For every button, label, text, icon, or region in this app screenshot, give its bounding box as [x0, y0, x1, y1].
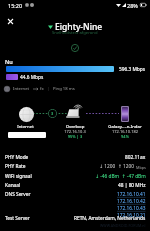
button[interactable]: Kanaal [5, 182, 146, 189]
staticText: 44.6 Mbps [20, 74, 44, 81]
button[interactable]: Close [3, 14, 17, 28]
staticText: Test Server [5, 215, 30, 222]
staticText: 95% | 3 [57, 134, 93, 139]
staticText: ↓ -46 dBm ↑ -47 dBm [95, 173, 146, 180]
staticText: Ping 18 ms [53, 86, 75, 92]
staticText: 172.16.10.43 [117, 205, 146, 212]
staticText: RETN, Amsterdam, Netherlands [74, 215, 146, 222]
staticText: 3 [51, 111, 54, 116]
staticText: DNS Server [5, 191, 31, 198]
staticText: Kanaal [5, 182, 21, 189]
staticText: Galaxy-...n-Indar [102, 123, 148, 129]
staticText: Snelheidstest afgerond [52, 30, 98, 36]
staticText: Eighty-Nine [55, 21, 103, 33]
staticText: 172.16.10.42 [117, 198, 146, 205]
button[interactable]: DNS Server [5, 191, 146, 219]
staticText: Nu [5, 58, 13, 65]
staticText: ↓ 1200 ↑ 1200 [99, 163, 136, 170]
staticText: Overloop [57, 123, 93, 129]
staticText: 94% [102, 134, 148, 139]
staticText: Internet [12, 123, 39, 129]
staticText: fx [40, 86, 44, 92]
staticText: 172.16.10.182 [102, 129, 148, 134]
staticText: 802.11ax [125, 154, 146, 161]
button[interactable]: Test Server [5, 215, 146, 222]
staticText: Internet [13, 86, 30, 92]
staticText: 172.16.10.21 [117, 212, 146, 219]
staticText: PHY Mode [5, 154, 29, 161]
staticText: WWW.ANDROID-FORUM.nl [100, 223, 146, 228]
staticText: 28% [127, 2, 138, 9]
staticText: 172.16.10.3 [57, 129, 93, 134]
button[interactable]: PHY Rate [5, 163, 146, 170]
staticText: 596.3 Mbps [119, 66, 146, 73]
staticText: 15:20 [8, 2, 23, 9]
staticText: Mbps [136, 165, 146, 170]
button[interactable]: WiFi signaal [5, 173, 146, 180]
staticText: 48 | 80 MHz [118, 182, 146, 189]
staticText: WiFi signaal [5, 173, 32, 180]
staticText: | [47, 86, 50, 92]
staticText: 172.16.10.41 [117, 191, 146, 198]
staticText: PHY Rate [5, 163, 26, 170]
button[interactable]: PHY Mode [5, 154, 146, 161]
